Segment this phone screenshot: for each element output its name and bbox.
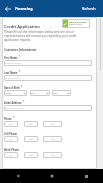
button[interactable]: Enter Last Name bbox=[4, 75, 92, 81]
staticText: Credit Application bbox=[4, 24, 40, 29]
staticText: Last Name bbox=[4, 71, 18, 74]
button[interactable]: Back bbox=[0, 169, 35, 183]
staticText: Cell Phone bbox=[4, 132, 18, 135]
button[interactable]: ### bbox=[4, 136, 18, 142]
staticText: Please fill out the information below an… bbox=[4, 30, 92, 42]
staticText: Phone bbox=[4, 117, 12, 120]
staticText: ### bbox=[9, 154, 13, 157]
staticText: ### bbox=[29, 123, 33, 126]
button[interactable]: Year bbox=[52, 90, 71, 96]
staticText: Work Phone bbox=[4, 148, 20, 151]
staticText: * bbox=[23, 100, 25, 104]
button[interactable]: Day bbox=[30, 90, 50, 96]
staticText: ### bbox=[51, 138, 55, 141]
staticText: ### bbox=[29, 154, 33, 157]
button[interactable]: ### bbox=[24, 121, 38, 127]
staticText: ### bbox=[51, 154, 55, 157]
staticText: powered by digicert bbox=[69, 24, 82, 26]
staticText: Enter Last Name bbox=[5, 77, 21, 80]
staticText: ### bbox=[29, 138, 33, 141]
button[interactable]: Verified and Secured bbox=[62, 19, 90, 28]
staticText: Email Address bbox=[4, 101, 22, 104]
staticText: Month bbox=[5, 92, 12, 95]
staticText: Customer Information bbox=[4, 48, 37, 52]
button[interactable]: Month bbox=[4, 90, 27, 96]
staticText: ### bbox=[9, 138, 13, 141]
button[interactable]: ### bbox=[24, 152, 38, 158]
button[interactable]: ### bbox=[24, 136, 38, 142]
staticText: ### bbox=[51, 123, 55, 126]
staticText: ### bbox=[9, 123, 13, 126]
button[interactable]: ### bbox=[4, 121, 18, 127]
button[interactable]: Back bbox=[0, 0, 15, 17]
staticText: Financing bbox=[15, 6, 33, 11]
button[interactable]: Enter First Name bbox=[4, 60, 92, 66]
staticText: * bbox=[19, 70, 21, 74]
staticText: Refresh bbox=[82, 6, 96, 11]
button[interactable]: ### bbox=[43, 121, 62, 127]
button[interactable]: ### bbox=[4, 152, 18, 158]
staticText: First Name bbox=[4, 56, 18, 59]
staticText: * bbox=[13, 116, 15, 120]
button[interactable]: ### bbox=[43, 152, 62, 158]
staticText: Enter Email Address bbox=[5, 107, 24, 110]
button[interactable]: Recents bbox=[69, 169, 103, 183]
button[interactable]: Refresh bbox=[76, 0, 103, 17]
staticText: VERIFIED & SECURED bbox=[69, 21, 87, 23]
button[interactable]: Enter Email Address bbox=[4, 105, 92, 111]
staticText: Year bbox=[53, 92, 58, 95]
staticText: Date of Birth bbox=[4, 86, 20, 89]
staticText: * bbox=[19, 55, 21, 59]
staticText: * bbox=[21, 85, 23, 89]
button[interactable]: Home bbox=[35, 169, 69, 183]
staticText: Enter First Name bbox=[5, 62, 21, 65]
button[interactable]: ### bbox=[43, 136, 62, 142]
staticText: Day bbox=[31, 92, 35, 95]
